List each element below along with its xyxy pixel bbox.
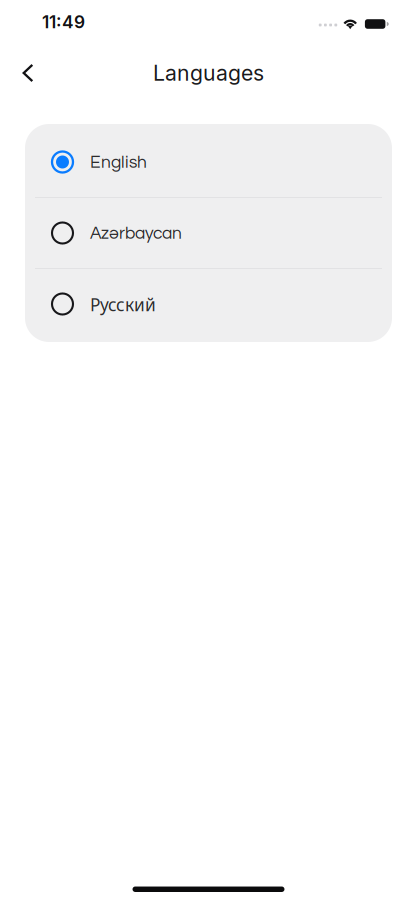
staticText: 11:49	[42, 11, 85, 32]
staticText: Azərbaycan	[90, 225, 182, 242]
staticText: English	[90, 154, 147, 171]
button[interactable]: Русский	[25, 269, 392, 339]
button[interactable]: English	[25, 127, 392, 197]
button[interactable]: Azərbaycan	[25, 198, 392, 268]
staticText: Русский	[90, 293, 156, 316]
button[interactable]: Back	[6, 51, 50, 95]
staticText: Languages	[153, 60, 264, 86]
